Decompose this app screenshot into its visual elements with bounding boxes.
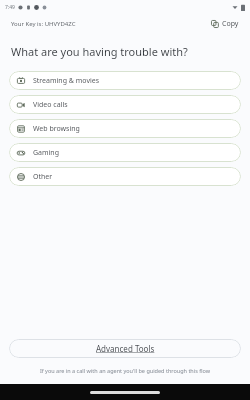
button[interactable]: Video calls bbox=[9, 95, 241, 114]
staticText: Streaming & movies bbox=[33, 76, 100, 86]
button[interactable]: Web browsing bbox=[9, 119, 241, 138]
staticText: What are you having trouble with? bbox=[11, 44, 188, 59]
staticText: Copy bbox=[222, 19, 239, 29]
staticText: Video calls bbox=[33, 100, 68, 110]
staticText: If you are in a call with an agent you'l… bbox=[14, 367, 236, 374]
staticText: Gaming bbox=[33, 148, 60, 158]
button[interactable]: Gaming bbox=[9, 143, 241, 162]
staticText: Web browsing bbox=[33, 124, 80, 134]
staticText: Advanced Tools bbox=[96, 343, 155, 354]
staticText: 7:49 bbox=[5, 4, 15, 11]
button[interactable]: Advanced Tools bbox=[9, 339, 241, 358]
button[interactable]: Copy bbox=[209, 17, 241, 31]
staticText: Your Key is: UHVYD4ZC bbox=[11, 20, 76, 28]
button[interactable]: Other bbox=[9, 167, 241, 186]
button[interactable]: Streaming & movies bbox=[9, 71, 241, 90]
staticText: Other bbox=[33, 172, 53, 182]
